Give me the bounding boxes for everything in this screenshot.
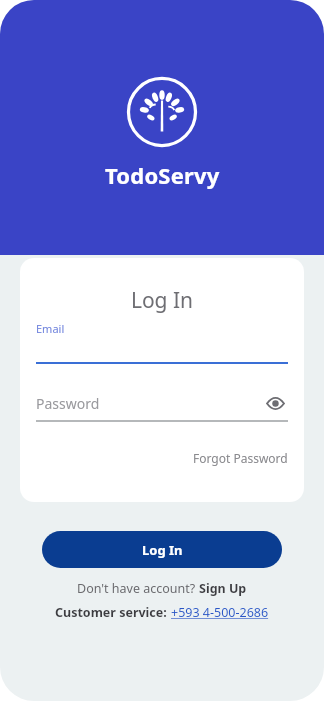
staticText: Customer service: bbox=[55, 604, 171, 621]
button[interactable]: Email bbox=[36, 321, 288, 364]
button[interactable]: Customer service: bbox=[55, 604, 269, 621]
button[interactable]: Password bbox=[36, 394, 262, 413]
staticText: TodoServy bbox=[105, 160, 220, 190]
staticText: Log In bbox=[20, 286, 304, 315]
staticText: Forgot Password bbox=[193, 450, 288, 466]
staticText: Log In bbox=[142, 541, 183, 559]
button[interactable]: Log In bbox=[42, 531, 282, 568]
button[interactable]: Forgot Password bbox=[193, 448, 288, 468]
staticText: Don't have account? bbox=[77, 580, 199, 597]
button[interactable]: Don't have account? bbox=[77, 580, 247, 597]
button[interactable]: Show password bbox=[262, 390, 288, 416]
staticText: Email bbox=[36, 321, 65, 336]
staticText: +593 4-500-2686 bbox=[171, 604, 269, 621]
staticText: Password bbox=[36, 394, 100, 413]
staticText: Sign Up bbox=[199, 580, 247, 597]
